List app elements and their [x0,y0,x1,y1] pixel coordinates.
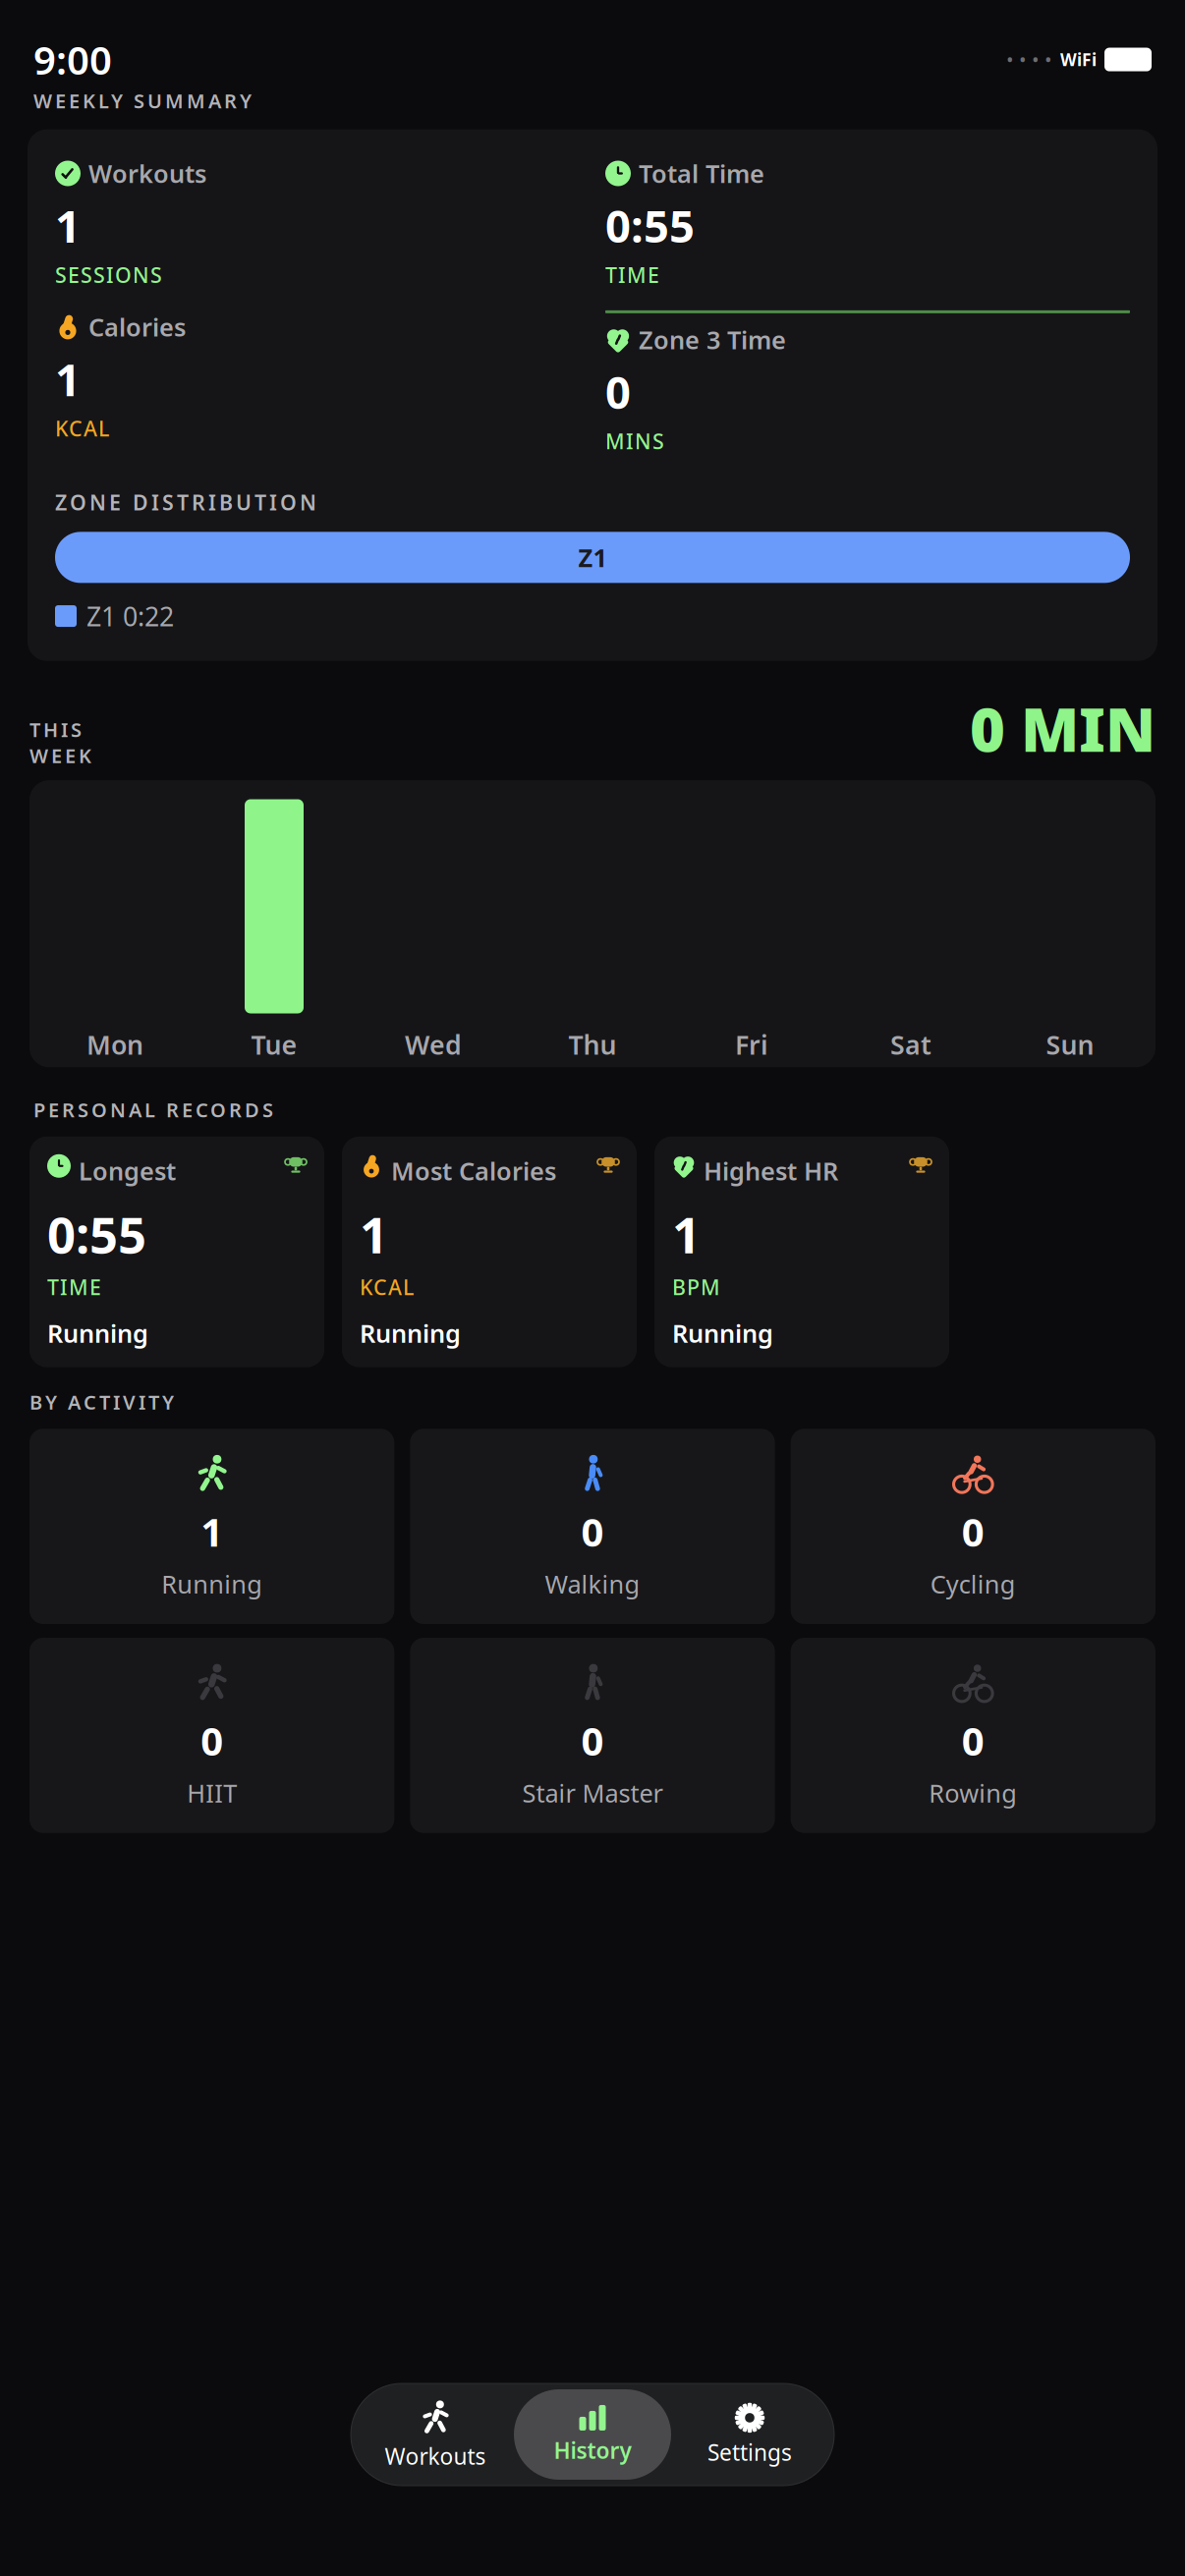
staticText: Settings [707,2437,792,2467]
staticText: Mon [86,1027,143,1062]
staticText: 1 [672,1201,701,1267]
staticText: Fri [735,1027,768,1062]
staticText: ZONE DISTRIBUTION [55,488,316,516]
staticText: • • • • [1006,46,1052,73]
staticText: HIIT [187,1776,237,1809]
staticText: Stair Master [522,1776,663,1809]
button[interactable]: 0 [410,1638,775,1833]
staticText: KCAL [360,1273,414,1301]
staticText: Running [161,1567,263,1600]
staticText: WEEKLY SUMMARY [33,88,252,114]
button[interactable]: Workouts [357,2389,514,2480]
staticText: Calories [88,310,186,343]
staticText: Highest HR [704,1154,838,1187]
staticText: Z1 0:22 [86,599,174,633]
staticText: BPM [672,1273,720,1301]
staticText: Running [672,1316,773,1350]
staticText: 0 MIN [970,689,1156,768]
staticText: Cycling [930,1567,1016,1600]
staticText: 0 [201,1714,223,1767]
staticText: Z1 [578,541,607,574]
staticText: Rowing [929,1776,1017,1809]
staticText: BY ACTIVITY [29,1389,174,1415]
staticText: Running [47,1316,148,1350]
staticText: History [554,2435,631,2465]
staticText: Running [360,1316,461,1350]
staticText: THIS WEEK [29,716,91,768]
staticText: 1 [201,1505,223,1557]
staticText: 1 [55,349,81,408]
staticText: Zone 3 Time [639,323,786,356]
staticText: Workouts [88,157,206,190]
staticText: Wed [405,1027,462,1062]
staticText: MINS [605,427,664,455]
button[interactable]: Most Calories [342,1137,637,1367]
staticText: Most Calories [391,1154,556,1187]
staticText: 0 [581,1714,604,1767]
button[interactable]: 1 [29,1429,394,1624]
staticText: 0 [581,1505,604,1557]
button[interactable]: 0 [29,1638,394,1833]
staticText: TIME [605,261,659,289]
staticText: Total Time [639,157,764,190]
button[interactable]: History [514,2389,671,2480]
button[interactable]: 0 [791,1429,1156,1624]
button[interactable]: 0 [410,1429,775,1624]
staticText: TIME [47,1273,101,1301]
staticText: 0 [962,1505,984,1557]
staticText: Sat [890,1027,931,1062]
staticText: PERSONAL RECORDS [33,1097,273,1123]
staticText: 0 [605,362,631,421]
staticText: Tue [251,1027,297,1062]
staticText: 1 [55,196,81,255]
staticText: SESSIONS [55,261,162,289]
staticText: Thu [568,1027,617,1062]
button[interactable]: Highest HR [654,1137,949,1367]
button[interactable]: Longest [29,1137,324,1367]
staticText: Workouts [385,2441,486,2471]
staticText: Longest [79,1154,176,1187]
staticText: 0:55 [47,1201,146,1267]
staticText: WiFi [1060,48,1097,71]
staticText: 1 [360,1201,388,1267]
staticText: KCAL [55,414,109,442]
staticText: 0:55 [605,196,695,255]
staticText: Walking [545,1567,640,1600]
staticText: 9:00 [33,33,112,86]
staticText: 0 [962,1714,984,1767]
button[interactable]: 0 [791,1638,1156,1833]
button[interactable]: Settings [671,2389,828,2480]
staticText: Sun [1046,1027,1094,1062]
